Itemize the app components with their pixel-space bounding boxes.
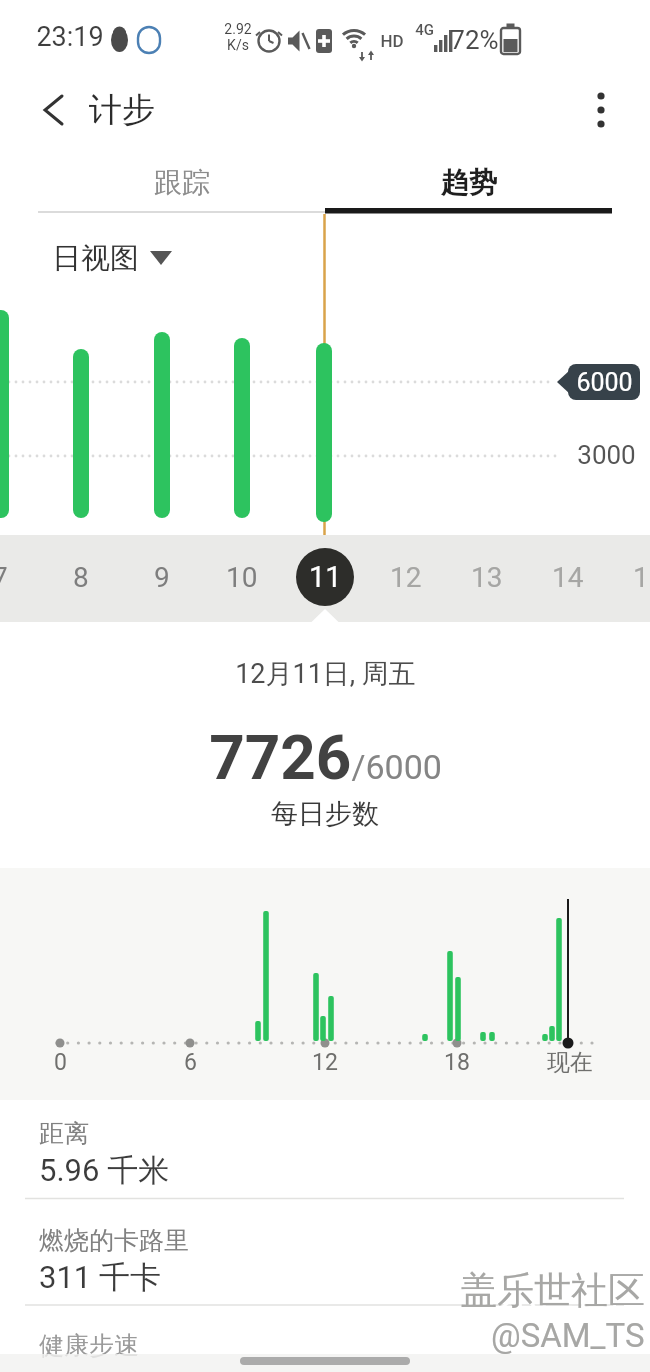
staticText: 18 — [444, 1049, 470, 1076]
button[interactable] — [0, 1200, 650, 1304]
staticText: 趋势 — [441, 165, 497, 200]
staticText: 健康步速 — [39, 1330, 139, 1361]
button[interactable]: 11 — [296, 548, 354, 606]
staticText: 3000 — [577, 440, 636, 470]
staticText: HD — [380, 31, 404, 51]
staticText: 8 — [73, 561, 89, 594]
staticText: 13 — [471, 561, 503, 594]
staticText: 距离 — [39, 1118, 89, 1149]
staticText: 计步 — [89, 89, 155, 131]
staticText: 6 — [184, 1049, 197, 1076]
button[interactable]: 14 — [533, 542, 603, 612]
button[interactable]: 9 — [127, 542, 197, 612]
staticText: 5.96 千米 — [39, 1151, 170, 1190]
staticText: 0 — [54, 1049, 67, 1076]
button[interactable]: 跟踪 — [38, 150, 325, 214]
staticText: K/s — [227, 37, 249, 53]
staticText: 15 — [633, 561, 650, 594]
staticText: 72% — [450, 25, 499, 55]
staticText: 11 — [309, 560, 342, 594]
button[interactable]: 15 — [614, 542, 650, 612]
staticText: 12月11日, 周五 — [235, 657, 416, 691]
staticText: 7726/6000 — [209, 721, 442, 794]
button[interactable] — [0, 1100, 650, 1205]
staticText: 6000 — [576, 368, 633, 397]
staticText: 12 — [312, 1049, 338, 1076]
button[interactable]: 10 — [207, 542, 277, 612]
staticText: 4G — [415, 21, 434, 39]
button[interactable]: 13 — [452, 542, 522, 612]
button[interactable]: 12 — [371, 542, 441, 612]
staticText: 盖乐世社区 — [463, 1270, 648, 1317]
staticText: 跟踪 — [154, 165, 210, 200]
staticText: 9 — [154, 561, 170, 594]
staticText: 12 — [390, 561, 422, 594]
staticText: 2.92 — [224, 21, 252, 37]
staticText: 燃烧的卡路里 — [39, 1225, 189, 1256]
button[interactable] — [40, 238, 180, 278]
staticText: @SAM_TS — [494, 1319, 648, 1358]
staticText: 10 — [226, 561, 258, 594]
staticText: 14 — [552, 561, 584, 594]
staticText: 23:19 — [36, 21, 104, 53]
button[interactable] — [30, 85, 80, 135]
staticText: 7 — [0, 561, 8, 594]
button[interactable]: 趋势 — [325, 150, 612, 214]
staticText: @SAM_TS — [491, 1316, 645, 1355]
staticText: 日视图 — [52, 240, 139, 277]
button[interactable] — [578, 85, 624, 135]
button[interactable]: 7 — [0, 542, 35, 612]
staticText: 盖乐世社区 — [460, 1267, 645, 1314]
staticText: 311 千卡 — [39, 1258, 161, 1297]
staticText: 每日步数 — [271, 797, 379, 831]
button[interactable]: 8 — [46, 542, 116, 612]
staticText: 现在 — [547, 1048, 593, 1077]
